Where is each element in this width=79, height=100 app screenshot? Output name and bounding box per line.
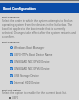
staticText: Select the order in which the system att… [2,19,76,39]
button[interactable]: UEFI boot list option [2,96,76,100]
staticText: Select the option to enable for the curr… [2,91,67,95]
staticText: ONBOARD NIC (IPV4) Device [14,60,50,64]
button[interactable]: Windows Boot Manager [2,44,76,51]
staticText: Boot Sequence [2,40,20,43]
staticText: USB Storage Device [14,74,39,78]
button[interactable]: ONBOARD NIC (IPV4) Device [2,58,76,65]
button[interactable]: UEFI HTTPs Boot Device Name [2,51,76,58]
button[interactable]: Internal HDD Device [2,79,76,86]
staticText: Internal HDD Device [14,81,40,85]
staticText: Windows Boot Manager [14,46,45,50]
staticText: UEFI HTTPs Boot Device Name [14,53,53,57]
button[interactable]: Boot Configuration [0,3,79,13]
button[interactable]: ONBOARD NIC (IPV6) Device [2,65,76,72]
staticText: Boot Sequence [2,15,20,18]
button[interactable]: USB Storage Device [2,72,76,79]
staticText: Boot List Option [2,88,21,91]
staticText: UEFI [12,96,18,100]
staticText: ONBOARD NIC (IPV6) Device [14,67,50,71]
staticText: Boot Configuration [3,6,36,11]
